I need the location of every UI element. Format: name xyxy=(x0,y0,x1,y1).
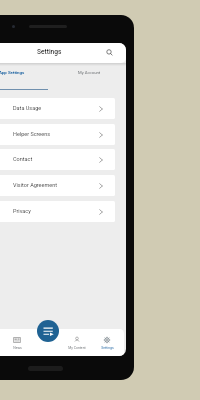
button[interactable]: Data Usage xyxy=(0,98,115,119)
button[interactable]: Search xyxy=(103,46,115,58)
button[interactable]: App Settings xyxy=(0,63,48,90)
staticText: My Content xyxy=(68,346,86,350)
staticText: News xyxy=(13,346,22,350)
staticText: Privacy xyxy=(13,208,31,214)
staticText: App Settings xyxy=(0,70,25,75)
button[interactable]: Privacy xyxy=(0,201,115,222)
staticText: My Account xyxy=(78,70,101,75)
button[interactable]: My Account xyxy=(48,63,126,90)
button[interactable]: Visitor Agreement xyxy=(0,175,115,196)
staticText: Contact xyxy=(13,156,33,162)
staticText: Settings xyxy=(101,346,114,350)
staticText: Settings xyxy=(37,48,62,56)
button[interactable]: Playlist xyxy=(37,320,59,342)
staticText: Helper Screens xyxy=(13,131,51,137)
staticText: Visitor Agreement xyxy=(13,182,58,188)
staticText: Data Usage xyxy=(13,105,42,111)
button[interactable]: My Content xyxy=(62,329,92,356)
button[interactable]: Settings xyxy=(92,329,122,356)
button[interactable]: News xyxy=(2,329,32,356)
button[interactable]: Contact xyxy=(0,149,115,170)
button[interactable]: Helper Screens xyxy=(0,124,115,145)
